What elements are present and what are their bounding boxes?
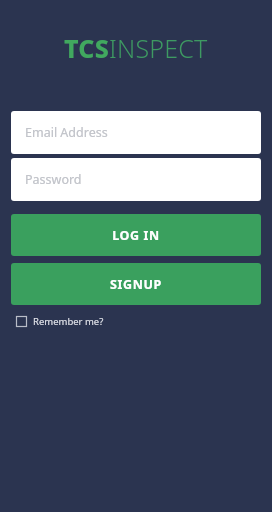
- staticText: TCS: [64, 31, 109, 65]
- button[interactable]: Remember me?: [16, 315, 272, 328]
- staticText: INSPECT: [109, 31, 208, 65]
- staticText: Remember me?: [33, 315, 104, 328]
- staticText: Email Address: [25, 124, 108, 141]
- button[interactable]: LOG IN: [11, 214, 261, 256]
- button[interactable]: Email Address: [11, 111, 261, 154]
- button[interactable]: Password: [11, 158, 261, 201]
- staticText: Password: [25, 171, 82, 188]
- staticText: LOG IN: [112, 227, 160, 244]
- button[interactable]: SIGNUP: [11, 263, 261, 305]
- staticText: SIGNUP: [110, 276, 162, 293]
